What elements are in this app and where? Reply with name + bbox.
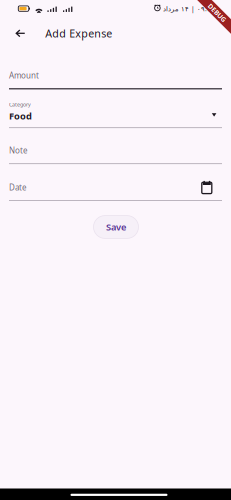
button[interactable]: Save (93, 216, 138, 238)
staticText: ۰۹:۴۰ | ۱۴ مرداد (162, 4, 214, 13)
button[interactable]: Note (9, 136, 222, 173)
staticText: DEBUG (206, 8, 229, 17)
staticText: Save (106, 221, 126, 233)
staticText: Food (9, 110, 32, 122)
button[interactable]: Category (9, 100, 222, 136)
staticText: Note (9, 145, 28, 156)
staticText: Amount (9, 70, 39, 81)
staticText: Category (9, 101, 31, 108)
staticText: Add Expense (45, 26, 112, 40)
button[interactable]: Back (7, 20, 33, 46)
button[interactable]: Date (9, 173, 222, 209)
button[interactable]: Amount (9, 60, 222, 100)
staticText: Date (9, 182, 27, 193)
